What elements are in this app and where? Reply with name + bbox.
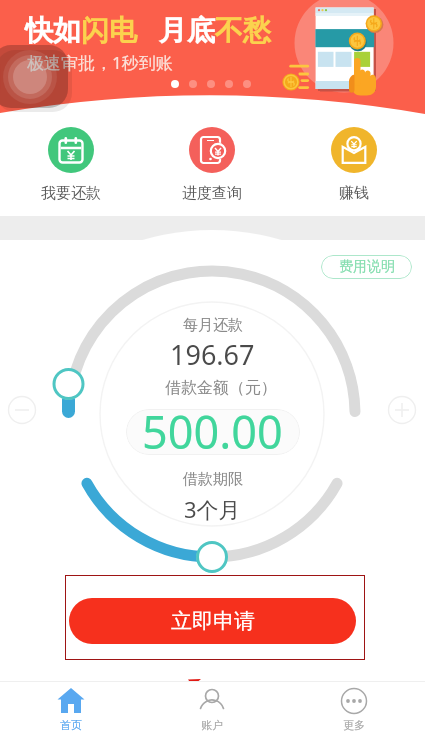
staticText: 每月还款 (183, 316, 243, 335)
button[interactable]: 进度查询 (141, 120, 283, 215)
staticText: 3个月 (184, 494, 241, 524)
staticText: 账户 (201, 718, 223, 732)
staticText: 进度查询 (182, 184, 242, 203)
button[interactable]: 立即申请 (69, 598, 356, 644)
button[interactable]: 费用说明 (321, 255, 412, 279)
button[interactable]: 账户 (141, 682, 283, 735)
staticText: 赚钱 (339, 184, 369, 203)
staticText: 196.67 (170, 336, 255, 373)
staticText: 500.00 (142, 401, 283, 462)
staticText: 借款金额（元） (165, 378, 277, 398)
staticText: 极速审批，1秒到账 (27, 51, 173, 74)
staticText: 我要还款 (41, 184, 101, 203)
staticText: 更多 (343, 718, 365, 732)
staticText: 首页 (60, 718, 82, 732)
staticText: 快如闪电 月底不愁 (25, 10, 271, 48)
button[interactable]: 我要还款 (0, 120, 141, 215)
button[interactable]: 更多 (283, 682, 425, 735)
button[interactable]: 首页 (0, 682, 141, 735)
staticText: 立即申请 (171, 608, 255, 634)
button[interactable]: 赚钱 (283, 120, 425, 215)
staticText: 费用说明 (339, 258, 395, 276)
staticText: 借款期限 (183, 470, 243, 489)
